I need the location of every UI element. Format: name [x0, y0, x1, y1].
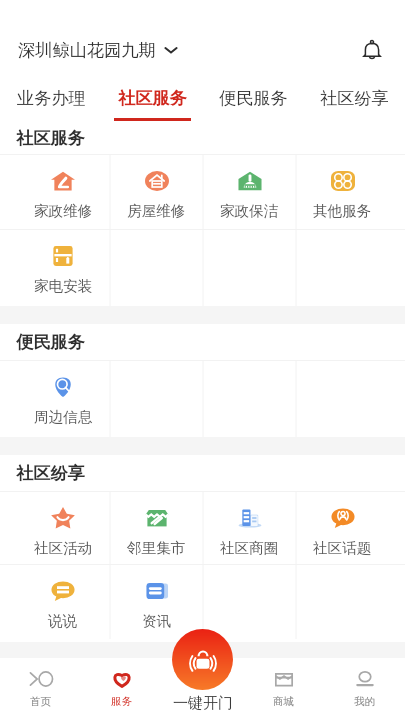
staticText: 社区商圈	[220, 539, 279, 557]
staticText: 首页	[30, 695, 51, 708]
button[interactable]: 社区商圈	[203, 492, 296, 565]
staticText: 业务办理	[17, 87, 86, 109]
staticText: 服务	[111, 695, 132, 708]
button[interactable]: 一键开门	[172, 629, 233, 690]
staticText: 便民服务	[219, 87, 288, 109]
button[interactable]: 深圳鲸山花园九期	[18, 33, 178, 67]
staticText: 社区服务	[16, 127, 85, 149]
staticText: 家电安装	[34, 277, 93, 295]
staticText: 社区纷享	[320, 87, 389, 109]
button[interactable]: 我的	[324, 658, 405, 720]
staticText: 我的	[354, 695, 375, 708]
button[interactable]: 服务	[81, 658, 162, 720]
staticText: 商城	[273, 695, 294, 708]
staticText: 家政保洁	[220, 202, 279, 220]
staticText: 房屋维修	[127, 202, 186, 220]
button[interactable]: 商城	[243, 658, 324, 720]
button[interactable]: 周边信息	[16, 361, 110, 437]
button[interactable]: 便民服务	[203, 78, 304, 122]
button[interactable]: 社区纷享	[304, 78, 405, 122]
button[interactable]: 社区活动	[16, 492, 110, 565]
staticText: 社区话题	[313, 539, 372, 557]
button[interactable]: 邻里集市	[110, 492, 203, 565]
staticText: 社区活动	[34, 539, 93, 557]
staticText: 社区服务	[118, 87, 187, 109]
staticText: 资讯	[142, 612, 172, 630]
staticText: 家政维修	[34, 202, 93, 220]
button[interactable]: 社区服务	[102, 78, 203, 122]
staticText: 一键开门	[173, 694, 233, 711]
button[interactable]: Notifications	[355, 33, 389, 67]
button[interactable]: 家政维修	[16, 155, 110, 230]
staticText: 其他服务	[313, 202, 372, 220]
button[interactable]: 说说	[16, 565, 110, 639]
button[interactable]: 首页	[0, 658, 81, 720]
staticText: 说说	[48, 612, 78, 630]
staticText: 深圳鲸山花园九期	[18, 39, 156, 61]
staticText: 社区纷享	[16, 462, 85, 484]
button[interactable]: 社区话题	[296, 492, 389, 565]
staticText: 周边信息	[34, 408, 93, 426]
button[interactable]: 家政保洁	[203, 155, 296, 230]
button[interactable]: 家电安装	[16, 230, 110, 306]
button[interactable]: 其他服务	[296, 155, 389, 230]
button[interactable]: 业务办理	[0, 78, 102, 122]
staticText: 邻里集市	[127, 539, 186, 557]
button[interactable]: 资讯	[110, 565, 203, 639]
button[interactable]: 房屋维修	[110, 155, 203, 230]
staticText: 便民服务	[16, 331, 85, 353]
